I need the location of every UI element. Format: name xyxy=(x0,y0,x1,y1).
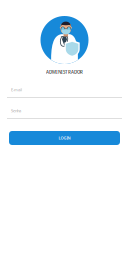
button[interactable]: E-mail xyxy=(7,87,122,98)
staticText: E-mail xyxy=(11,87,22,92)
button[interactable]: Senha xyxy=(7,108,122,119)
button[interactable]: LOGIN xyxy=(9,131,120,145)
staticText: ADMINISTRADOR xyxy=(46,69,83,75)
staticText: LOGIN xyxy=(58,135,70,141)
staticText: Senha xyxy=(11,108,21,113)
